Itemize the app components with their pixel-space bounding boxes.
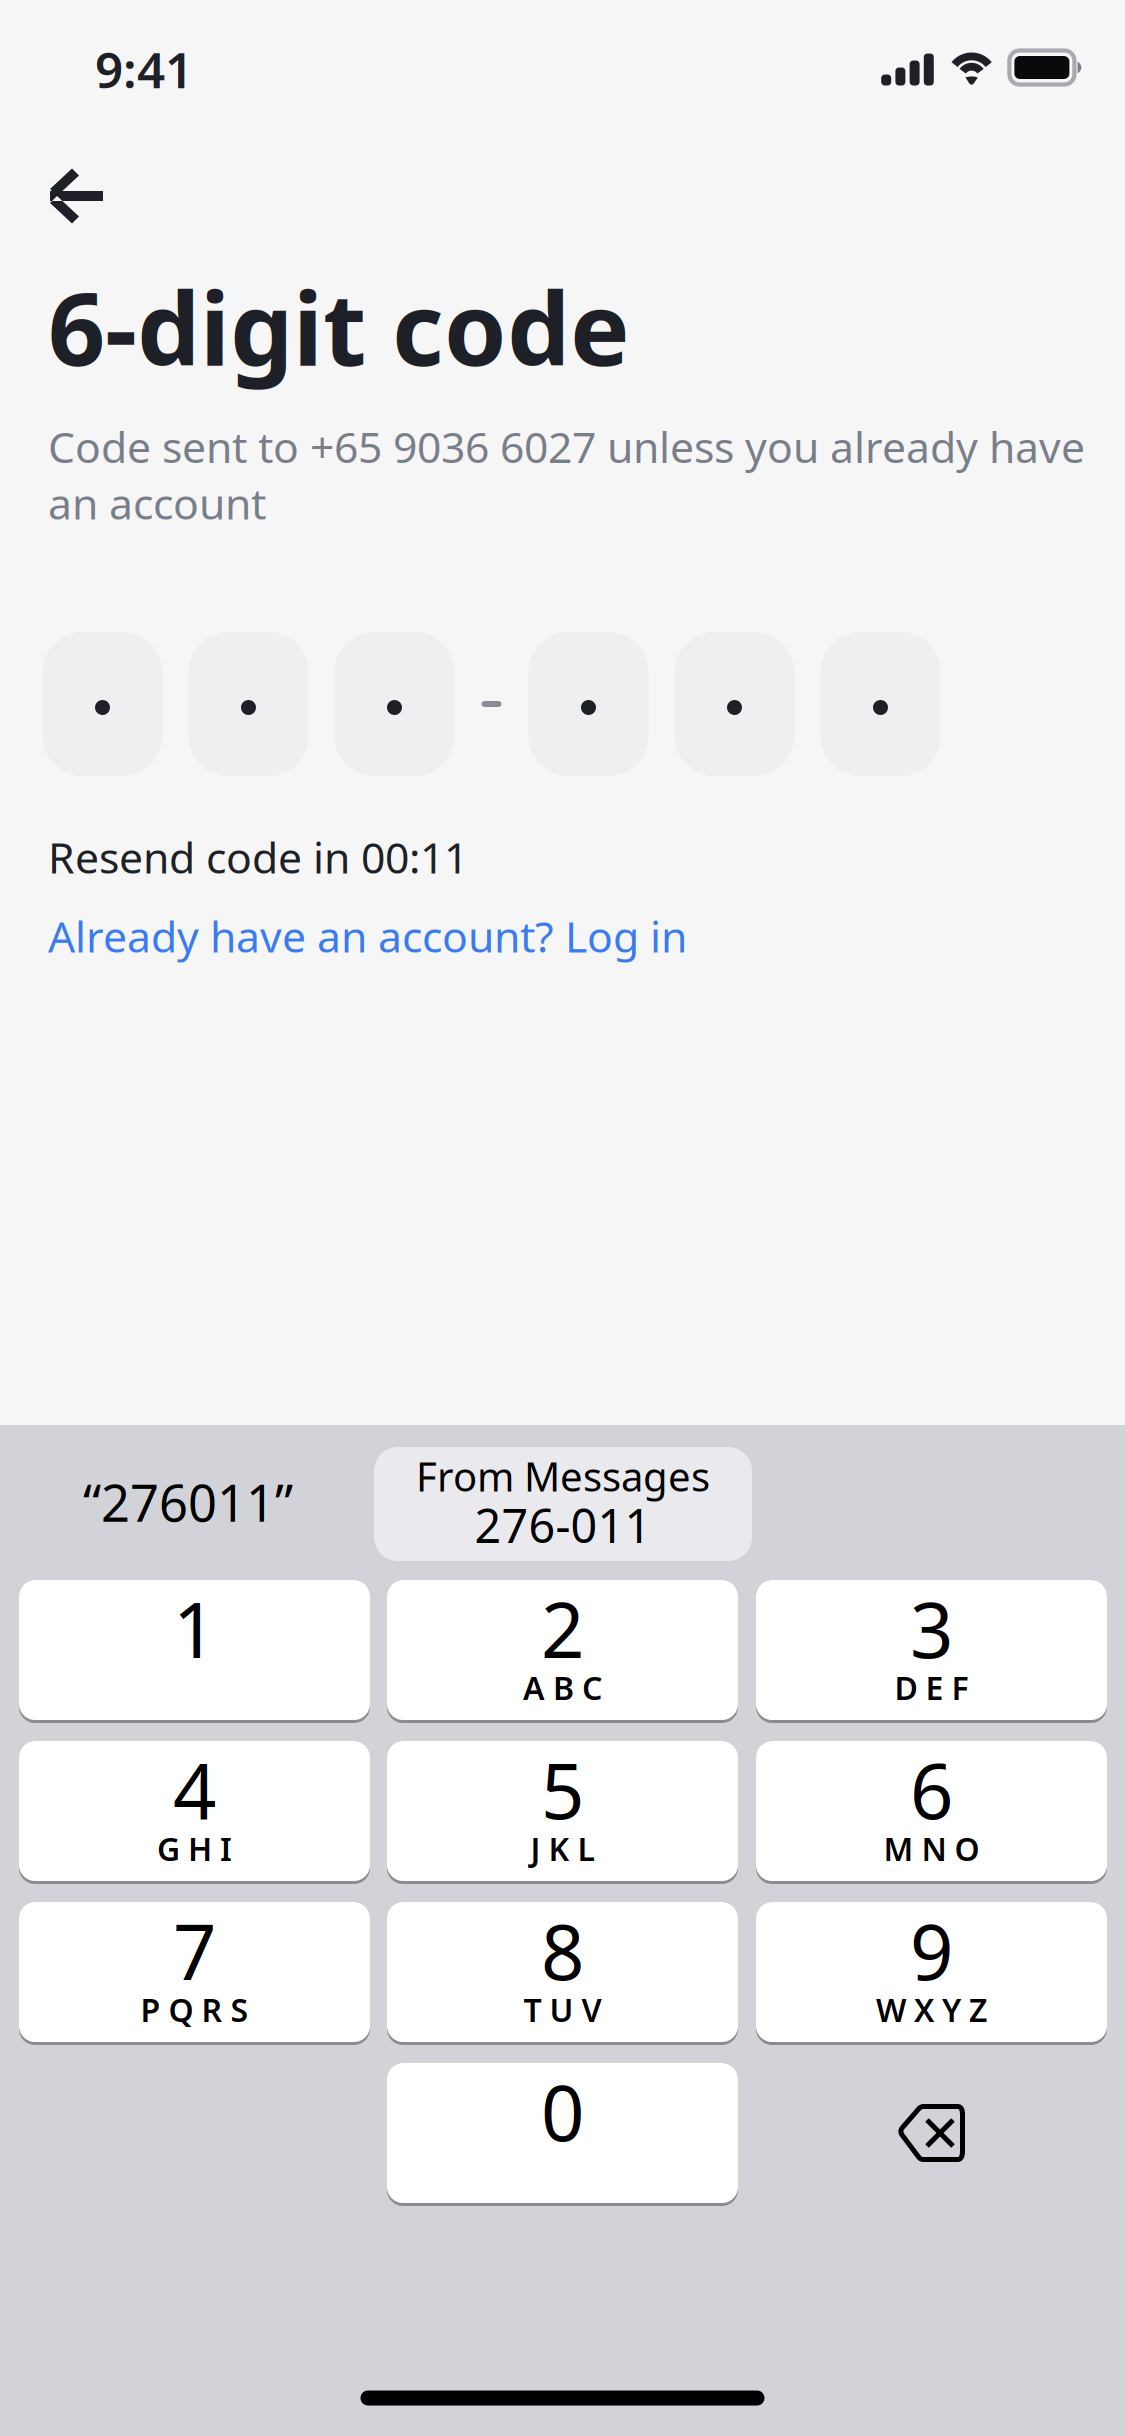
- staticText: 1: [173, 1578, 216, 1679]
- button[interactable]: 4: [19, 1741, 370, 1884]
- staticText: From Messages: [416, 1449, 710, 1502]
- staticText: J K L: [530, 1827, 594, 1870]
- button[interactable]: 5: [387, 1741, 738, 1884]
- staticText: 7: [173, 1900, 216, 2001]
- button[interactable]: 1: [19, 1580, 370, 1723]
- staticText: Already have an account? Log in: [48, 908, 687, 964]
- staticText: 6-digit code: [48, 261, 630, 393]
- button[interactable]: Already have an account? Log in: [48, 900, 848, 972]
- staticText: 2: [541, 1578, 584, 1679]
- staticText: D E F: [894, 1666, 968, 1709]
- button[interactable]: Delete: [756, 2063, 1107, 2203]
- button[interactable]: 0: [387, 2063, 738, 2206]
- staticText: Code sent to +65 9036 6027 unless you al…: [48, 418, 1085, 531]
- button[interactable]: 3: [756, 1580, 1107, 1723]
- staticText: Resend code in 00:11: [48, 829, 468, 885]
- button[interactable]: Back: [0, 146, 132, 246]
- staticText: 0: [541, 2061, 584, 2162]
- button[interactable]: 8: [387, 1902, 738, 2045]
- staticText: 9:41: [95, 36, 193, 102]
- staticText: 3: [910, 1578, 953, 1679]
- staticText: 8: [541, 1900, 584, 2001]
- staticText: 6: [910, 1739, 953, 1840]
- staticText: 276-011: [474, 1494, 651, 1556]
- button[interactable]: 9: [756, 1902, 1107, 2045]
- staticText: G H I: [157, 1827, 232, 1870]
- staticText: P Q R S: [140, 1988, 248, 2031]
- staticText: 9: [910, 1900, 953, 2001]
- button[interactable]: 2: [387, 1580, 738, 1723]
- staticText: T U V: [523, 1988, 601, 2031]
- button[interactable]: 6: [756, 1741, 1107, 1884]
- staticText: 4: [173, 1739, 216, 1840]
- button[interactable]: 7: [19, 1902, 370, 2045]
- staticText: A B C: [523, 1666, 602, 1709]
- staticText: “276011”: [83, 1468, 293, 1536]
- staticText: 5: [541, 1739, 584, 1840]
- staticText: M N O: [883, 1827, 979, 1870]
- staticText: W X Y Z: [876, 1988, 987, 2031]
